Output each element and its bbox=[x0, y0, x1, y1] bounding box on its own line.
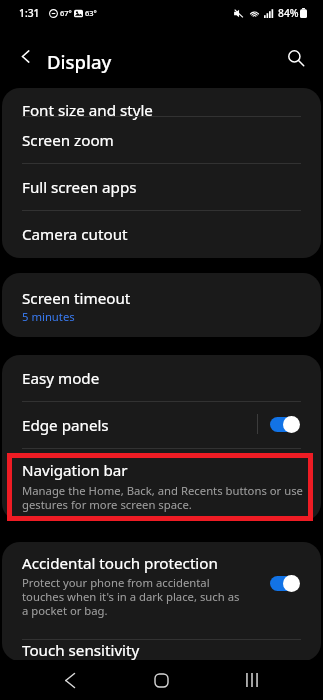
staticText: 1:31 bbox=[19, 6, 40, 20]
staticText: Protect your phone from accidental touch… bbox=[22, 575, 248, 618]
button[interactable]: Touch sensitivity bbox=[2, 640, 321, 661]
button[interactable]: Accidental touch protection bbox=[2, 542, 321, 640]
staticText: Font size and style bbox=[22, 100, 153, 121]
staticText: Manage the Home, Back, and Recents butto… bbox=[22, 483, 303, 512]
button[interactable]: Screen zoom bbox=[2, 117, 321, 164]
staticText: 84% bbox=[278, 6, 299, 20]
staticText: Edge panels bbox=[22, 415, 109, 436]
staticText: 67° bbox=[60, 8, 72, 18]
button[interactable]: Search bbox=[279, 41, 313, 75]
button[interactable]: Recents bbox=[232, 660, 272, 700]
staticText: Display bbox=[47, 49, 112, 74]
button[interactable] bbox=[270, 575, 300, 592]
button[interactable]: Screen timeout bbox=[2, 273, 321, 337]
staticText: Full screen apps bbox=[22, 177, 137, 198]
staticText: 5 minutes bbox=[22, 309, 75, 324]
button[interactable]: Full screen apps bbox=[2, 164, 321, 211]
button[interactable]: Easy mode bbox=[2, 355, 321, 402]
button[interactable]: Back bbox=[10, 41, 40, 71]
button[interactable] bbox=[270, 416, 300, 433]
staticText: Camera cutout bbox=[22, 224, 128, 245]
button[interactable]: Home bbox=[141, 660, 181, 700]
button[interactable]: Back bbox=[50, 660, 90, 700]
button[interactable]: Font size and style bbox=[2, 88, 321, 117]
button[interactable]: Camera cutout bbox=[2, 211, 321, 258]
staticText: Accidental touch protection bbox=[22, 553, 218, 574]
staticText: Screen timeout bbox=[22, 288, 131, 309]
staticText: Easy mode bbox=[22, 368, 100, 389]
staticText: Screen zoom bbox=[22, 130, 114, 151]
button[interactable]: Navigation bar bbox=[2, 449, 321, 521]
button[interactable]: Edge panels bbox=[2, 402, 321, 449]
staticText: Navigation bar bbox=[22, 460, 128, 481]
staticText: 63° bbox=[85, 8, 97, 18]
staticText: Touch sensitivity bbox=[22, 640, 140, 661]
